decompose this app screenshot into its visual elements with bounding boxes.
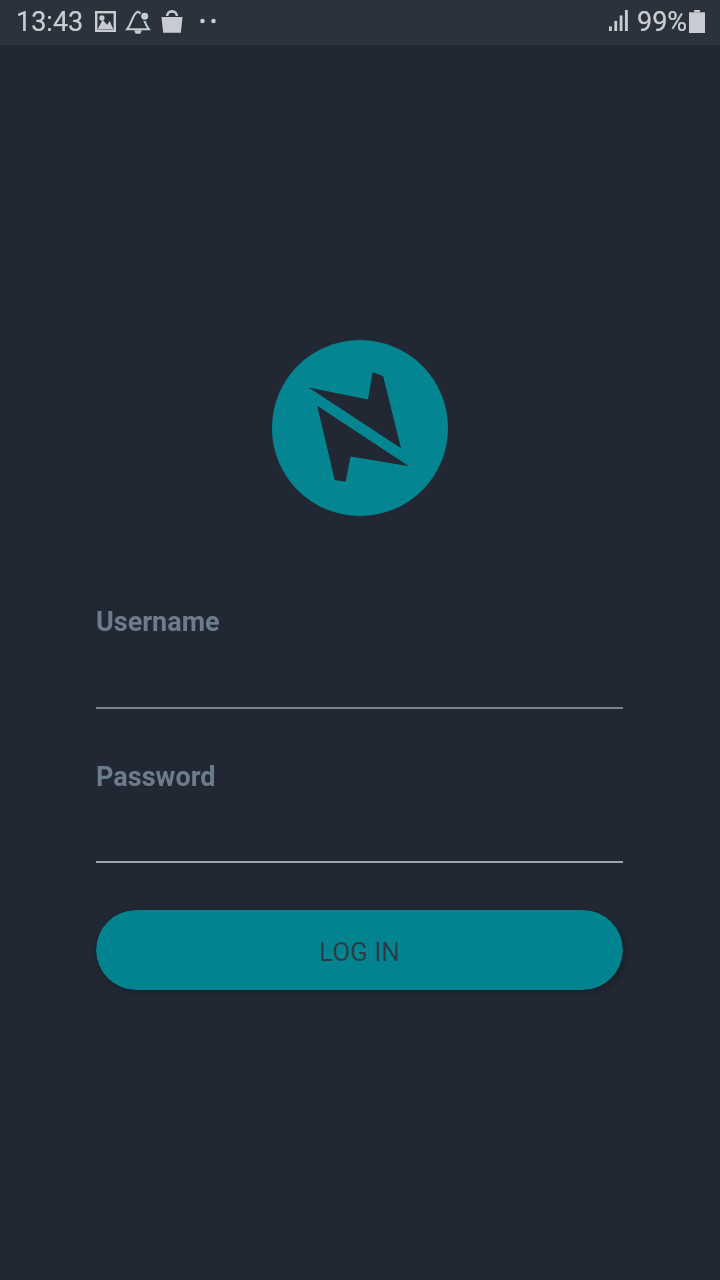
other: Shopping <box>161 10 183 33</box>
other: Mobile signal <box>609 10 628 31</box>
other: More notifications <box>200 10 218 32</box>
staticText: Password <box>96 761 216 793</box>
button[interactable]: LOG IN <box>96 910 623 990</box>
other: Battery <box>689 10 705 33</box>
button[interactable]: Username <box>96 596 623 709</box>
other: Notifications <box>126 10 150 34</box>
staticText: LOG IN <box>319 937 400 967</box>
other: App logo <box>272 340 448 516</box>
other: Screenshot saved <box>95 11 116 32</box>
staticText: 99% <box>637 6 688 38</box>
staticText: 13:43 <box>16 6 84 38</box>
staticText: Username <box>96 606 220 638</box>
button[interactable]: Password <box>96 750 623 863</box>
